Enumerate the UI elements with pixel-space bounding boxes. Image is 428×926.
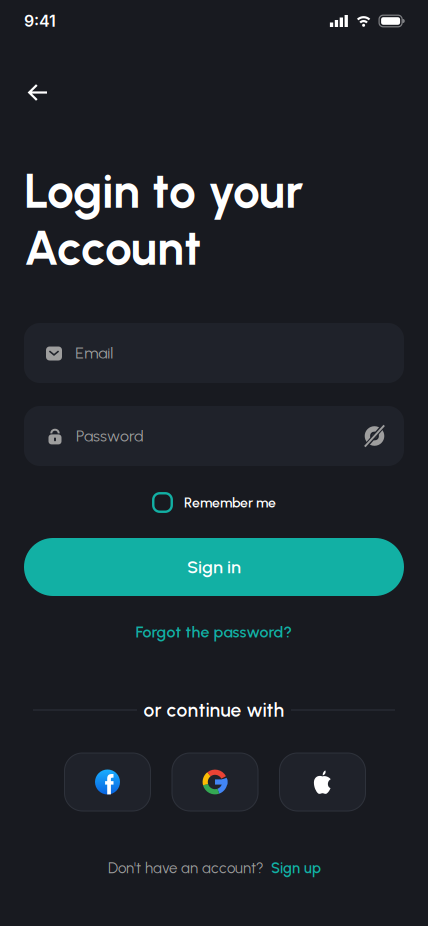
staticText: Account (24, 219, 201, 277)
button[interactable]: Email (24, 323, 404, 383)
button[interactable]: Continue with Google (172, 753, 258, 811)
button[interactable]: Continue with Facebook (64, 753, 150, 811)
button[interactable]: Sign in (24, 538, 404, 596)
staticText: or continue with (143, 698, 284, 721)
staticText: Don't have an account? (108, 859, 264, 877)
button[interactable]: Password (24, 406, 404, 466)
staticText: Sign up (271, 859, 321, 877)
button[interactable]: Continue with Apple (279, 753, 365, 811)
staticText: Email (75, 343, 113, 363)
button[interactable]: Remember me (152, 492, 276, 513)
staticText: Login to your (24, 162, 303, 220)
button[interactable]: Forgot the password? (135, 622, 292, 642)
staticText: Forgot the password? (135, 622, 292, 642)
staticText: Remember me (184, 494, 276, 511)
staticText: Sign in (187, 556, 241, 578)
button[interactable]: Sign up (271, 859, 321, 877)
button[interactable]: Back (20, 75, 56, 109)
staticText: 9:41 (24, 11, 56, 31)
staticText: Password (76, 426, 144, 446)
